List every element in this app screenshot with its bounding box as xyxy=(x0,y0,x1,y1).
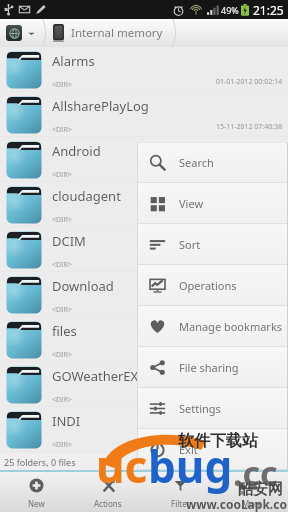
staticText: <DIR> xyxy=(52,440,72,450)
staticText: Actions xyxy=(94,498,122,509)
staticText: <DIR> xyxy=(52,395,72,405)
staticText: 酷安网 xyxy=(238,480,283,499)
staticText: AllsharePlayLog xyxy=(52,97,149,115)
staticText: 21:25 xyxy=(253,2,284,18)
button[interactable]: INDI xyxy=(0,407,288,452)
button[interactable]: Search xyxy=(137,142,288,182)
button[interactable]: Android xyxy=(0,137,288,182)
staticText: Sort xyxy=(179,237,201,252)
button[interactable]: Exit xyxy=(137,429,288,469)
button[interactable]: GOWeatherEX xyxy=(0,362,288,407)
staticText: File sharing xyxy=(179,360,239,375)
staticText: <DIR> xyxy=(52,125,72,135)
staticText: .cc xyxy=(233,450,278,496)
button[interactable]: Storage xyxy=(6,25,22,41)
button[interactable]: DCIM xyxy=(0,227,288,272)
button[interactable]: cloudagent xyxy=(0,182,288,227)
staticText: 25 folders, 0 files xyxy=(4,456,76,468)
staticText: New xyxy=(28,498,45,509)
staticText: 49% xyxy=(221,4,239,16)
button[interactable]: More xyxy=(216,472,288,512)
staticText: <DIR> xyxy=(52,350,72,360)
staticText: 01-01-2012 00:02:14 xyxy=(216,77,283,87)
button[interactable]: Settings xyxy=(137,388,288,428)
staticText: Internal memory xyxy=(71,25,163,41)
button[interactable]: Actions xyxy=(72,472,144,512)
button[interactable]: Internal memory xyxy=(52,19,177,47)
button[interactable]: Download xyxy=(0,272,288,317)
staticText: Alarms xyxy=(52,52,95,70)
staticText: cloudagent xyxy=(52,187,121,205)
staticText: 软件下载站 xyxy=(178,431,258,451)
staticText: View xyxy=(179,196,204,211)
staticText: Android xyxy=(52,142,101,160)
staticText: DCIM xyxy=(52,232,86,250)
staticText: <DIR> xyxy=(52,305,72,315)
staticText: Download xyxy=(52,277,114,295)
button[interactable]: New xyxy=(0,472,72,512)
staticText: <DIR> xyxy=(52,170,72,180)
button[interactable]: File sharing xyxy=(137,347,288,387)
staticText: Search xyxy=(179,155,214,170)
staticText: INDI xyxy=(52,412,81,430)
staticText: bug xyxy=(148,436,233,496)
staticText: 15-11-2012 07:40:38 xyxy=(216,122,283,132)
button[interactable]: Filter xyxy=(144,472,216,512)
button[interactable]: Sort xyxy=(137,224,288,264)
staticText: Operations xyxy=(179,278,237,293)
staticText: <DIR> xyxy=(52,260,72,270)
button[interactable]: AllsharePlayLog xyxy=(0,92,288,137)
staticText: Exit xyxy=(179,442,198,457)
staticText: uc xyxy=(96,436,148,496)
staticText: <DIR> xyxy=(52,215,72,225)
staticText: www.cooLapk.com xyxy=(186,496,288,512)
staticText: Filter xyxy=(171,498,190,509)
staticText: GOWeatherEX xyxy=(52,367,139,385)
button[interactable]: Dropdown xyxy=(27,29,36,38)
staticText: files xyxy=(52,322,77,340)
button[interactable]: Operations xyxy=(137,265,288,305)
button[interactable]: View xyxy=(137,183,288,223)
button[interactable]: files xyxy=(0,317,288,362)
staticText: More xyxy=(242,498,262,509)
button[interactable]: Manage bookmarks xyxy=(137,306,288,346)
staticText: Settings xyxy=(179,401,221,416)
staticText: <DIR> xyxy=(52,80,72,90)
button[interactable]: Alarms xyxy=(0,47,288,92)
staticText: Manage bookmarks xyxy=(179,319,283,334)
